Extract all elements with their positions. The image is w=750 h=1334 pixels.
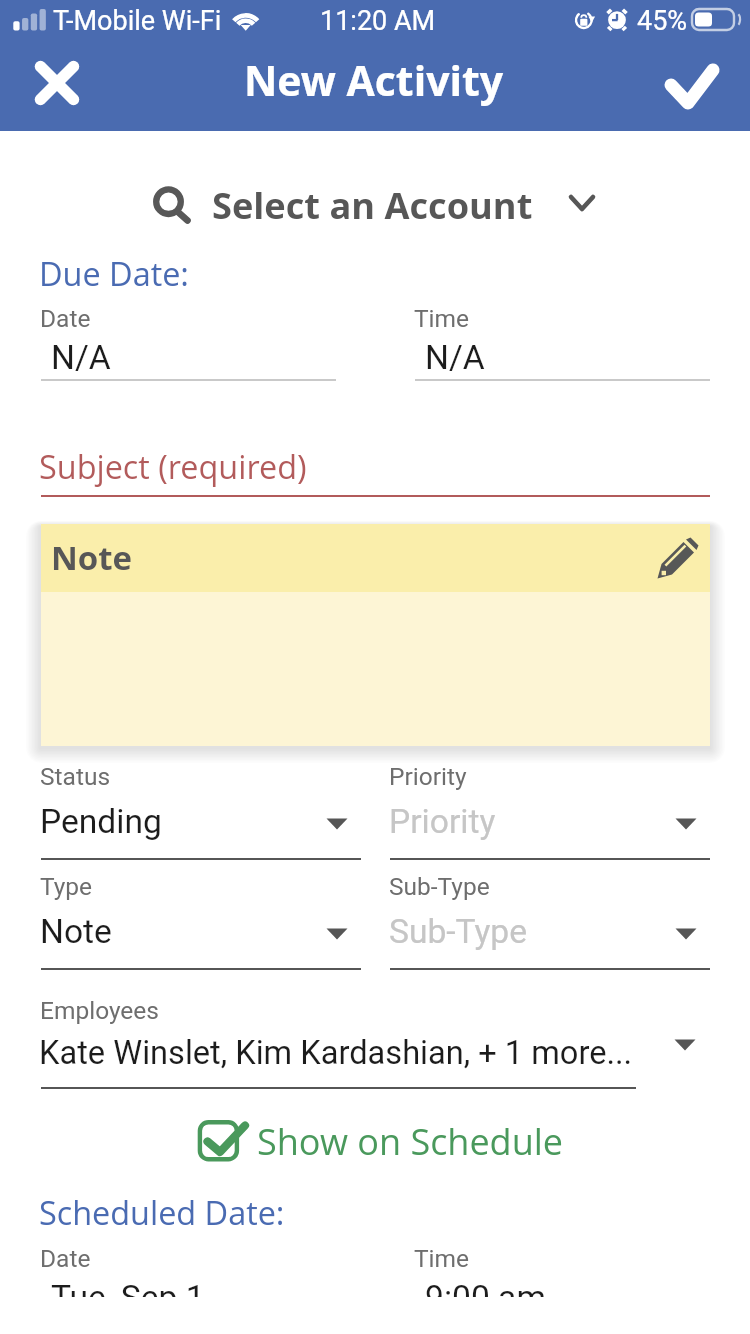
staticText: Date [40,1244,91,1273]
staticText: Tue, Sep 1 [51,1278,205,1297]
staticText: Show on Schedule [257,1117,564,1166]
staticText: Note [40,912,112,951]
staticText: Kate Winslet, Kim Kardashian, + 1 more..… [39,1034,633,1072]
staticText: Note [51,535,133,580]
staticText: Pending [40,802,162,841]
button[interactable] [190,1110,568,1176]
staticText: Select an Account [212,180,533,229]
button[interactable] [415,298,710,387]
button[interactable] [140,161,610,245]
button[interactable] [390,866,710,972]
staticText: Date [40,304,91,333]
staticText: Priority [389,762,467,791]
button[interactable]: Close [6,44,102,131]
staticText: Status [40,762,111,791]
staticText: N/A [425,338,485,377]
staticText: N/A [51,338,111,377]
staticText: Sub-Type [389,872,490,901]
staticText: Priority [389,802,496,841]
staticText: New Activity [244,52,504,108]
button[interactable]: Edit note [648,528,708,588]
staticText: Due Date: [39,251,189,295]
staticText: Type [40,872,93,901]
button[interactable] [41,1238,336,1297]
staticText: 11:20 AM [320,5,436,37]
button[interactable] [41,866,361,972]
button[interactable] [41,756,361,862]
staticText: Time [414,304,470,333]
button[interactable] [390,756,710,862]
staticText: Employees [40,996,159,1025]
staticText: 9:00 am [425,1278,546,1297]
button[interactable] [41,298,336,387]
staticText: Scheduled Date: [39,1190,285,1234]
staticText: Sub-Type [389,912,528,951]
button[interactable] [415,1238,710,1297]
button[interactable] [41,440,710,498]
staticText: Time [414,1244,470,1273]
staticText: 45% [637,5,688,37]
button[interactable]: Save [646,44,742,131]
button[interactable] [41,992,700,1092]
staticText: Subject (required) [39,444,307,488]
staticText: T-Mobile Wi-Fi [53,5,222,37]
